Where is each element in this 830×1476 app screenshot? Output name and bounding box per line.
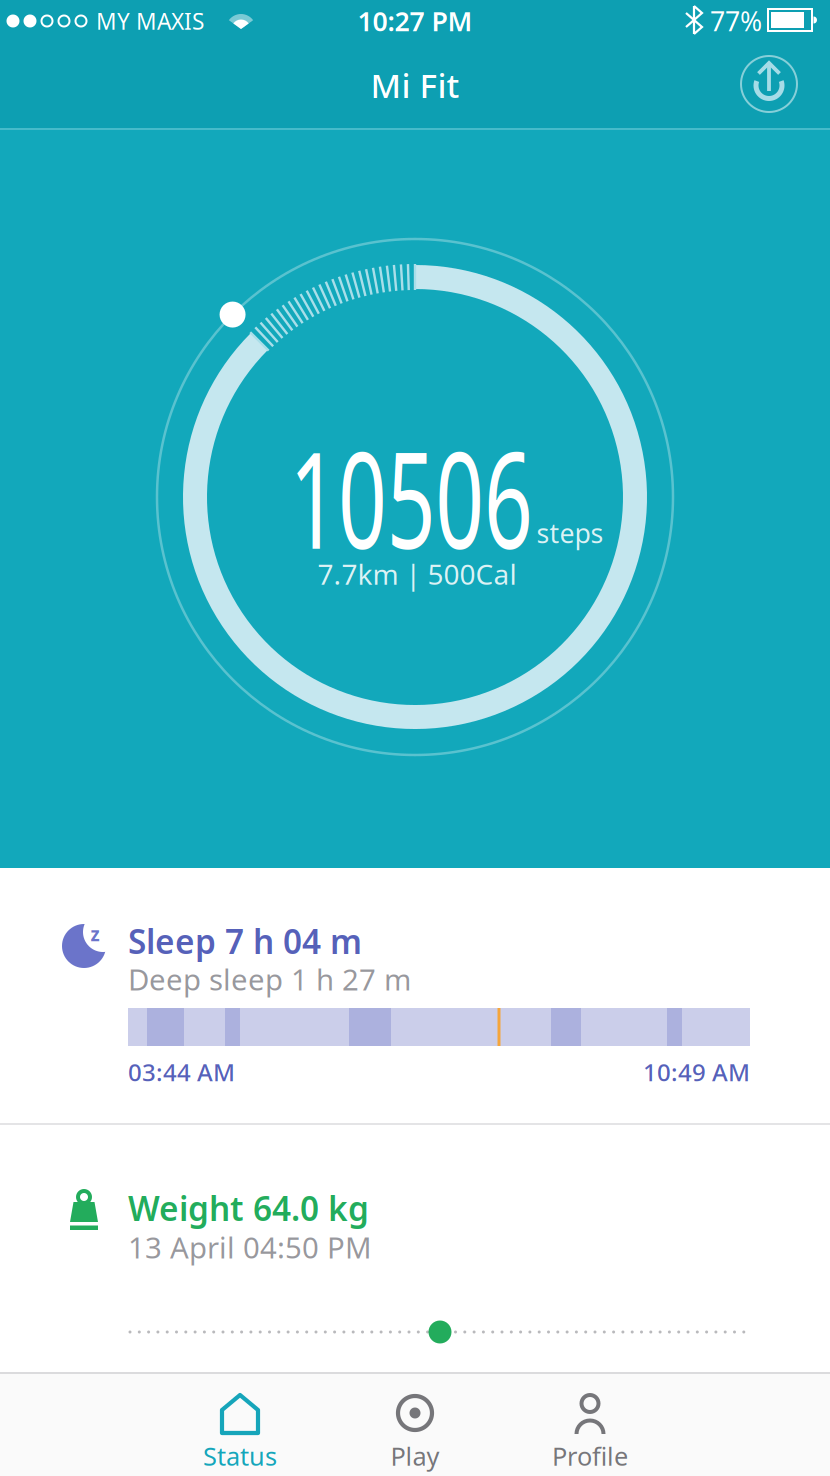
staticText: 10:49 AM: [643, 1056, 750, 1088]
staticText: z: [90, 922, 99, 946]
staticText: Profile: [552, 1439, 628, 1473]
staticText: Weight 64.0 kg: [128, 1186, 369, 1230]
button[interactable]: Status: [152, 1372, 327, 1476]
staticText: 13 April 04:50 PM: [128, 1227, 372, 1266]
staticText: Deep sleep 1 h 27 m: [128, 959, 411, 998]
button[interactable]: Play: [327, 1372, 502, 1476]
staticText: Sleep 7 h 04 m: [128, 919, 362, 963]
button[interactable]: z: [0, 868, 830, 1124]
button[interactable]: Steps detail: [0, 130, 830, 868]
staticText: 10:27 PM: [357, 3, 472, 39]
staticText: MY MAXIS: [96, 6, 204, 36]
button[interactable]: Share: [737, 52, 801, 116]
staticText: Play: [390, 1439, 439, 1473]
staticText: Mi Fit: [370, 63, 459, 107]
staticText: 77%: [710, 3, 762, 39]
staticText: steps: [536, 515, 603, 551]
staticText: 03:44 AM: [128, 1056, 235, 1088]
button[interactable]: Profile: [502, 1372, 677, 1476]
staticText: 7.7km | 500Cal: [317, 555, 516, 593]
staticText: 10506: [221, 408, 601, 586]
staticText: Status: [203, 1439, 277, 1473]
button[interactable]: Weight 64.0 kg: [0, 1126, 830, 1372]
